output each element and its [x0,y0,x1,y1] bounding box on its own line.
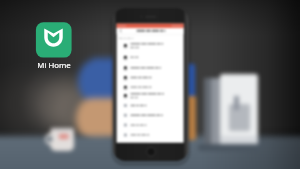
staticText: Mi Home [14,60,94,71]
button[interactable]: Mi Home app icon [0,0,300,169]
